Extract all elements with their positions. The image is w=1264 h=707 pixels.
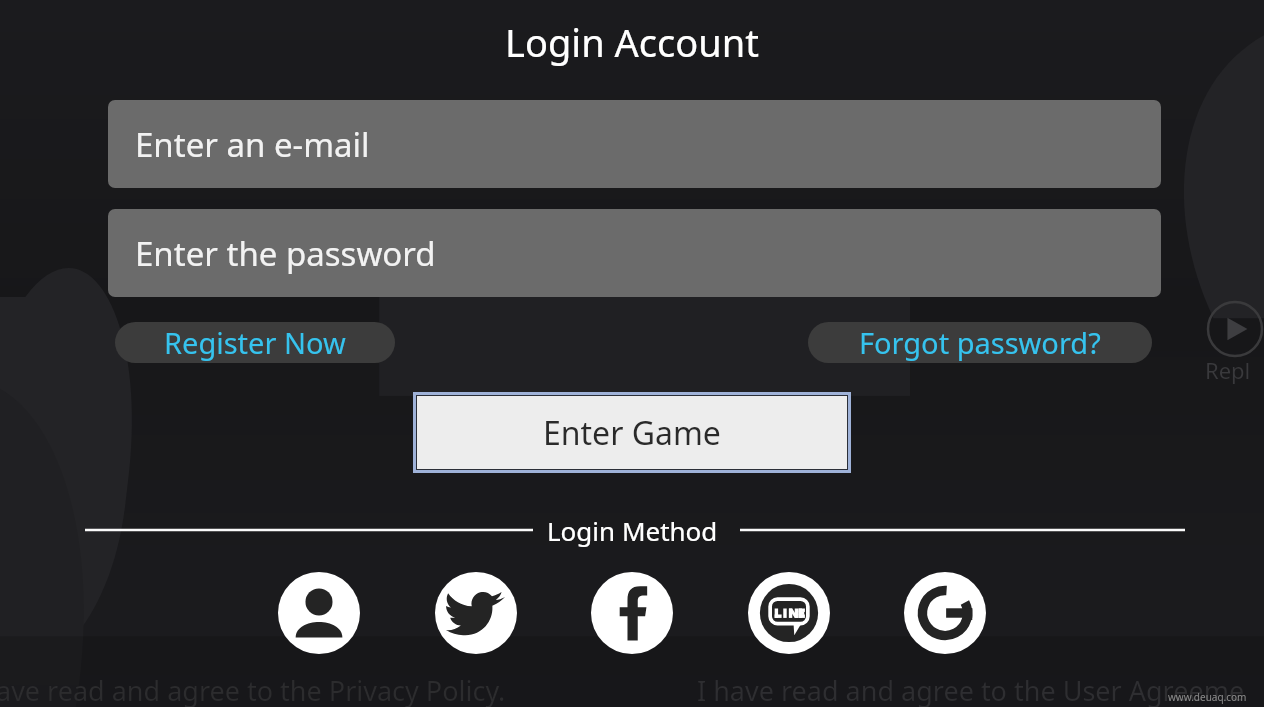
staticText: Forgot password?: [859, 323, 1101, 362]
button[interactable]: Register Now: [115, 322, 395, 363]
staticText: Register Now: [164, 323, 346, 362]
button[interactable]: Sign in with Twitter: [435, 572, 517, 654]
button[interactable]: Sign in with Google: [904, 572, 986, 654]
button[interactable]: Forgot password?: [808, 322, 1152, 363]
staticText: Login Method: [547, 513, 718, 547]
button[interactable]: Sign in with LINE: [748, 572, 830, 654]
staticText: Enter the password: [135, 231, 436, 276]
button[interactable]: Enter the password: [108, 209, 1161, 297]
button[interactable]: Guest login: [278, 572, 360, 654]
button[interactable]: Enter an e-mail: [108, 100, 1161, 188]
staticText: I have read and agree to the User Agreem…: [697, 672, 1245, 707]
staticText: www.deuaq.com: [1168, 690, 1247, 704]
staticText: Login Account: [505, 16, 759, 68]
button[interactable]: Sign in with Facebook: [591, 572, 673, 654]
staticText: ave read and agree to the Privacy Policy…: [0, 672, 506, 707]
staticText: Enter Game: [543, 411, 721, 455]
button[interactable]: Enter Game: [417, 396, 847, 469]
staticText: Enter an e-mail: [135, 122, 370, 167]
staticText: Repl: [1205, 355, 1251, 385]
